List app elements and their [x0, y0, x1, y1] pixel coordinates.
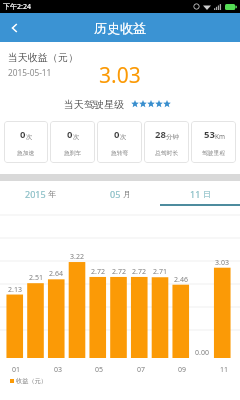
staticText: 2015-05-11 — [8, 67, 52, 78]
staticText: 05 — [88, 365, 110, 375]
staticText: 3.22 — [66, 252, 88, 262]
staticText: 11 — [190, 188, 201, 200]
staticText: 日 — [203, 189, 211, 199]
staticText: 收益（元） — [16, 377, 47, 385]
staticText: 急转弯 — [111, 149, 129, 156]
button[interactable]: 11 — [160, 181, 240, 206]
staticText: 次 — [120, 133, 127, 141]
staticText: 2.51 — [25, 273, 47, 283]
staticText: 2.71 — [149, 267, 171, 277]
staticText: 2.64 — [45, 269, 67, 279]
staticText: 急加速 — [17, 149, 35, 156]
staticText: 2015 — [25, 188, 46, 200]
button[interactable]: 收益（元） — [10, 377, 47, 385]
staticText: 53 — [204, 128, 215, 141]
staticText: 0 — [67, 128, 73, 141]
button[interactable]: 0 — [50, 121, 95, 163]
staticText: 28 — [155, 128, 166, 141]
staticText: 急刹车 — [64, 149, 82, 156]
staticText: 0 — [114, 128, 120, 141]
staticText: 年 — [48, 189, 56, 199]
button[interactable]: 2015 — [0, 181, 80, 206]
staticText: 3.03 — [99, 61, 141, 90]
staticText: 驾驶里程 — [202, 149, 226, 156]
button[interactable]: 0 — [4, 121, 48, 163]
staticText: 09 — [171, 365, 193, 375]
staticText: 月 — [123, 189, 131, 199]
staticText: 03 — [47, 365, 69, 375]
staticText: Km — [215, 132, 225, 141]
button[interactable]: 28 — [144, 121, 189, 163]
staticText: 当天驾驶星级 — [64, 98, 124, 111]
staticText: 次 — [26, 133, 33, 141]
staticText: 2.72 — [87, 267, 109, 277]
staticText: 0.00 — [191, 348, 213, 358]
staticText: 0 — [20, 128, 26, 141]
staticText: 2.13 — [4, 285, 26, 295]
button[interactable]: 53 — [191, 121, 236, 163]
staticText: 3.03 — [211, 258, 233, 268]
staticText: 2.72 — [108, 267, 130, 277]
staticText: 2.46 — [170, 275, 192, 285]
staticText: 05 — [110, 188, 121, 200]
staticText: 当天收益（元） — [8, 51, 78, 64]
staticText: 下午2:24 — [3, 2, 31, 12]
staticText: 次 — [73, 133, 80, 141]
staticText: 01 — [5, 365, 27, 375]
staticText: 2.72 — [128, 267, 150, 277]
button[interactable]: 05 — [80, 181, 160, 206]
staticText: 07 — [130, 365, 152, 375]
staticText: 11 — [213, 365, 235, 375]
staticText: 总驾时长 — [155, 149, 179, 156]
button[interactable]: 0 — [97, 121, 142, 163]
staticText: 分钟 — [166, 133, 179, 141]
button[interactable]: Back — [0, 13, 30, 42]
staticText: 历史收益 — [94, 20, 146, 36]
